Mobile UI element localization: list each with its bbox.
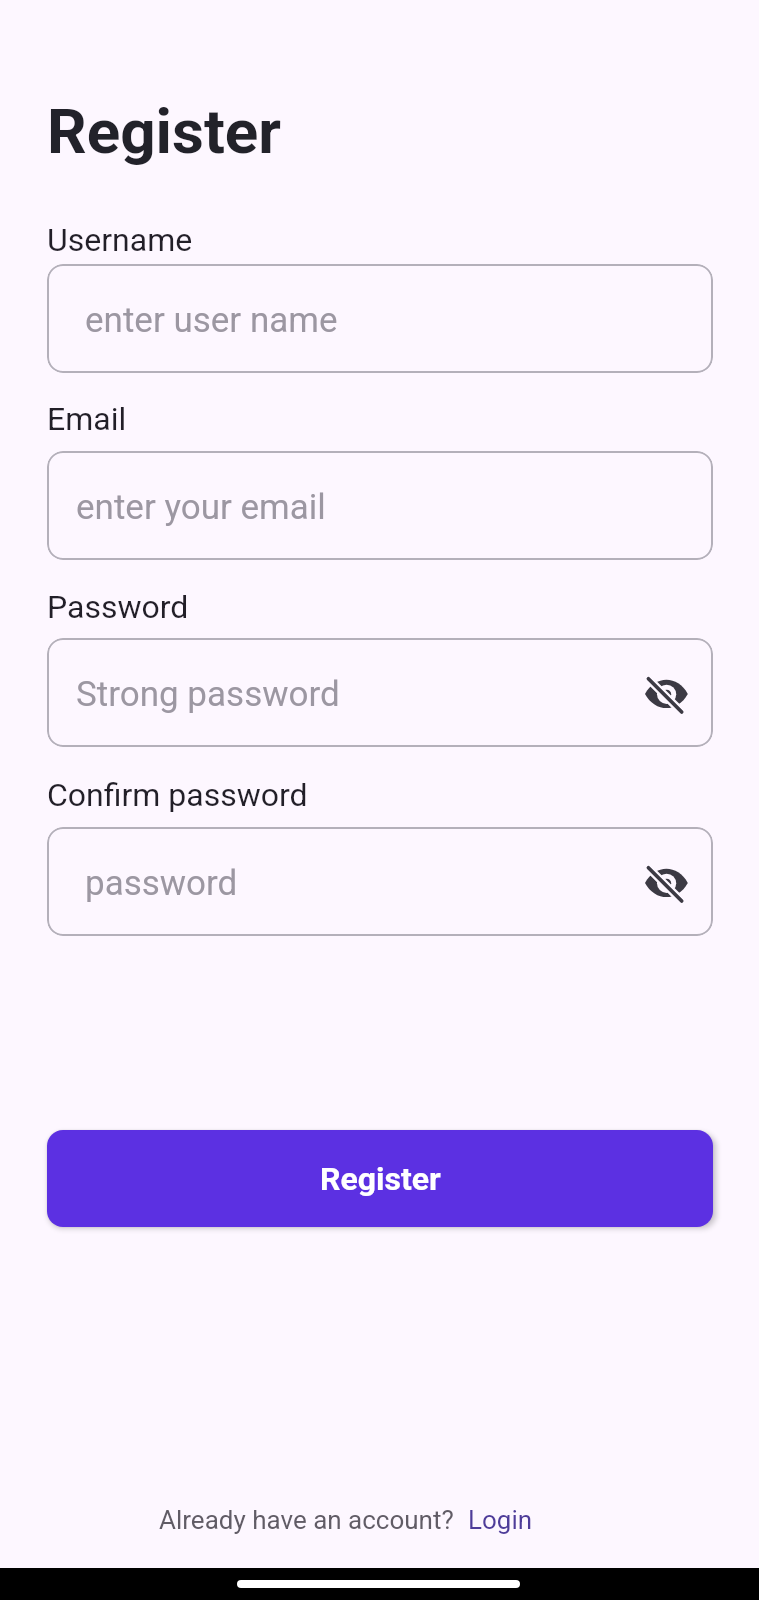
button[interactable]: Toggle password visibility	[635, 662, 697, 724]
button[interactable]: Register	[47, 1130, 713, 1227]
staticText: Login	[468, 1505, 533, 1535]
button[interactable]: Toggle password visibility	[635, 851, 697, 913]
staticText: Email	[47, 400, 127, 438]
staticText: Already have an account?	[159, 1505, 454, 1535]
staticText: enter user name	[85, 300, 338, 341]
button[interactable]: Login	[456, 1499, 545, 1541]
staticText: Register	[320, 1160, 441, 1198]
staticText: password	[85, 863, 238, 904]
staticText: Strong password	[76, 674, 340, 715]
button[interactable]: enter your email	[47, 451, 713, 560]
staticText: Password	[47, 588, 189, 626]
staticText: enter your email	[76, 487, 326, 528]
staticText: Register	[47, 95, 282, 168]
button[interactable]: Strong password	[47, 638, 713, 747]
staticText: Confirm password	[47, 776, 308, 814]
staticText: Username	[47, 221, 193, 259]
button[interactable]: enter user name	[47, 264, 713, 373]
button[interactable]: password	[47, 827, 713, 936]
